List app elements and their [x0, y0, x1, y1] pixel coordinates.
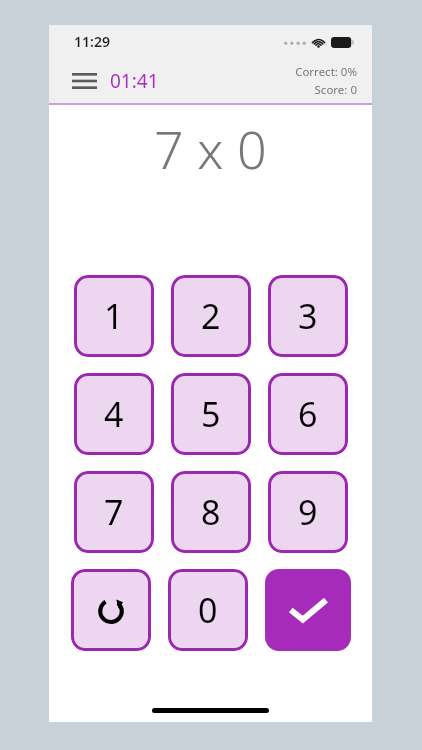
staticText: Correct: 0%	[295, 64, 357, 80]
staticText: Score: 0	[314, 82, 357, 98]
button[interactable]: Submit answer	[265, 569, 351, 651]
button[interactable]: Restart	[71, 569, 151, 651]
staticText: 01:41	[110, 68, 159, 94]
button[interactable]: 4	[74, 373, 154, 455]
staticText: 9	[298, 489, 318, 535]
button[interactable]: Menu	[67, 64, 101, 98]
staticText: 6	[298, 391, 318, 437]
staticText: 5	[201, 391, 221, 437]
staticText: 2	[201, 293, 221, 339]
staticText: 4	[104, 391, 124, 437]
staticText: 11:29	[74, 32, 110, 51]
button[interactable]: 1	[74, 275, 154, 357]
button[interactable]: 8	[171, 471, 251, 553]
staticText: 1	[104, 293, 124, 339]
button[interactable]: 6	[268, 373, 348, 455]
staticText: 7	[104, 489, 124, 535]
button[interactable]: 2	[171, 275, 251, 357]
staticText: 0	[198, 587, 218, 633]
button[interactable]: 5	[171, 373, 251, 455]
staticText: 3	[298, 293, 318, 339]
staticText: 7 x 0	[154, 113, 267, 184]
button[interactable]: 3	[268, 275, 348, 357]
staticText: 8	[201, 489, 221, 535]
button[interactable]: 0	[168, 569, 248, 651]
button[interactable]: 7	[74, 471, 154, 553]
button[interactable]: 9	[268, 471, 348, 553]
